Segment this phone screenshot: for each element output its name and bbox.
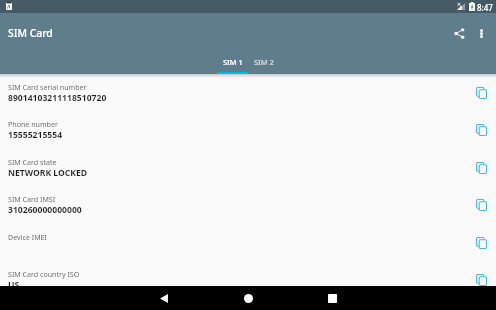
button[interactable]: Copy xyxy=(471,270,491,290)
button[interactable]: Home xyxy=(236,286,260,310)
button[interactable]: SIM 1 xyxy=(217,50,248,74)
staticText: SIM 2 xyxy=(254,57,274,67)
button[interactable]: SIM Card serial number xyxy=(0,75,496,112)
staticText: SIM Card state xyxy=(8,157,57,167)
button[interactable]: SIM Card IMSI xyxy=(0,187,496,224)
button[interactable]: Device IMEI xyxy=(0,225,496,262)
button[interactable]: Phone number xyxy=(0,112,496,149)
staticText: 89014103211118510720 xyxy=(8,92,107,104)
button[interactable]: Back xyxy=(152,286,176,310)
staticText: 310260000000000 xyxy=(8,204,82,216)
button[interactable]: Copy xyxy=(471,233,491,253)
button[interactable]: Copy xyxy=(471,158,491,178)
button[interactable]: Recent apps xyxy=(320,286,344,310)
button[interactable]: Copy xyxy=(471,120,491,140)
button[interactable]: SIM Card country ISO xyxy=(0,262,496,299)
button[interactable]: SIM 2 xyxy=(248,50,279,74)
staticText: 8:47 xyxy=(477,2,493,13)
staticText: US xyxy=(8,279,20,291)
staticText: Device IMEI xyxy=(8,232,47,242)
button[interactable]: Copy xyxy=(471,83,491,103)
button[interactable]: Copy xyxy=(471,195,491,215)
button[interactable]: Share xyxy=(447,21,471,45)
staticText: 15555215554 xyxy=(8,129,63,141)
staticText: SIM Card IMSI xyxy=(8,194,56,204)
button[interactable]: More options xyxy=(469,21,493,45)
staticText: SIM 1 xyxy=(223,57,243,67)
staticText: NETWORK LOCKED xyxy=(8,167,88,179)
staticText: Phone number xyxy=(8,119,58,129)
button[interactable]: SIM Card state xyxy=(0,150,496,187)
staticText: SIM Card serial number xyxy=(8,82,87,92)
staticText: SIM Card xyxy=(8,26,53,40)
staticText: SIM Card country ISO xyxy=(8,269,80,279)
